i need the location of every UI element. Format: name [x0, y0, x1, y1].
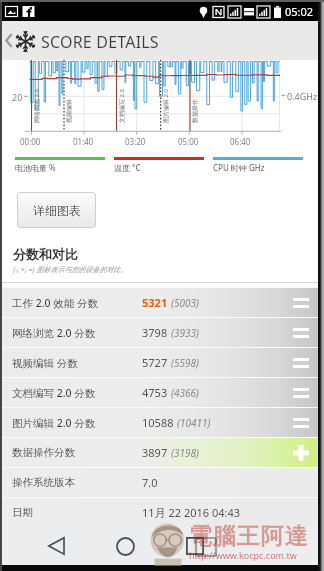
staticText: 0.4GHz [287, 90, 318, 102]
staticText: 视频编辑 [65, 99, 73, 123]
staticText: (5598) [171, 356, 199, 370]
staticText: 详细图表 [33, 203, 81, 218]
staticText: 03:20 [125, 136, 146, 147]
staticText: 温度 °C [114, 162, 141, 173]
staticText: (3198) [171, 446, 199, 460]
staticText: 图片编辑 2.0 分数 [12, 416, 96, 430]
staticText: 电池电量 % [15, 162, 56, 173]
staticText: 工作 2.0 效能 分数 [12, 296, 99, 310]
staticText: 5321 [142, 295, 168, 310]
staticText: 5727 [142, 355, 168, 370]
staticText: 05:00 [178, 136, 199, 147]
button[interactable]: 操作系统版本 [2, 467, 318, 497]
staticText: (5003) [171, 296, 199, 310]
staticText: 图片编辑 2.0 [162, 88, 170, 123]
button[interactable]: Recents [175, 527, 215, 565]
staticText: 操作系统版本 [12, 476, 75, 489]
staticText: http://www.kocpc.com.tw [189, 549, 297, 561]
staticText: 06:40 [230, 136, 251, 147]
staticText: (-, +, =) 图标表示与您的设备的对比。 [13, 265, 128, 275]
staticText: 10588 [142, 415, 174, 430]
staticText: 文档编写 2.0 [118, 88, 126, 123]
staticText: 11月 22 2016 04:43 [142, 505, 241, 520]
button[interactable]: 详细图表 [17, 192, 96, 228]
staticText: 分数和对比 [13, 246, 78, 262]
staticText: 4753 [142, 385, 168, 400]
button[interactable]: 工作 2.0 效能 分数 [2, 287, 318, 317]
staticText: (10411) [177, 416, 211, 430]
button[interactable]: Back [2, 21, 15, 60]
button[interactable]: Back [36, 527, 76, 565]
staticText: SCORE DETAILS [41, 31, 159, 53]
staticText: 网络浏览 2.0 [33, 88, 41, 123]
staticText: 数据操作分数 [12, 446, 75, 459]
staticText: CPU 时钟 GHz [213, 162, 265, 173]
staticText: (4366) [171, 386, 199, 400]
button[interactable]: Home [105, 527, 145, 565]
staticText: 7.0 [142, 475, 158, 490]
staticText: 20 [12, 91, 23, 103]
button[interactable]: 网络浏览 2.0 分数 [2, 317, 318, 347]
button[interactable]: 图片编辑 2.0 分数 [2, 407, 318, 437]
staticText: 3897 [142, 445, 168, 460]
button[interactable]: 数据操作分数 [2, 437, 318, 467]
staticText: 3798 [142, 325, 168, 340]
staticText: 01:40 [73, 136, 94, 147]
button[interactable]: 日期 [2, 497, 318, 527]
staticText: 网络浏览 2.0 分数 [12, 326, 96, 340]
staticText: 電腦王阿達 [188, 522, 308, 551]
staticText: 日期 [12, 506, 33, 519]
staticText: 文档编写 2.0 分数 [12, 386, 96, 400]
staticText: 05:02 [285, 4, 314, 19]
staticText: 视频编辑 分数 [12, 356, 78, 370]
staticText: (3933) [171, 326, 199, 340]
staticText: 00:00 [20, 136, 41, 147]
button[interactable]: 视频编辑 分数 [2, 347, 318, 377]
staticText: 数据操作 [191, 99, 199, 123]
button[interactable]: 文档编写 2.0 分数 [2, 377, 318, 407]
